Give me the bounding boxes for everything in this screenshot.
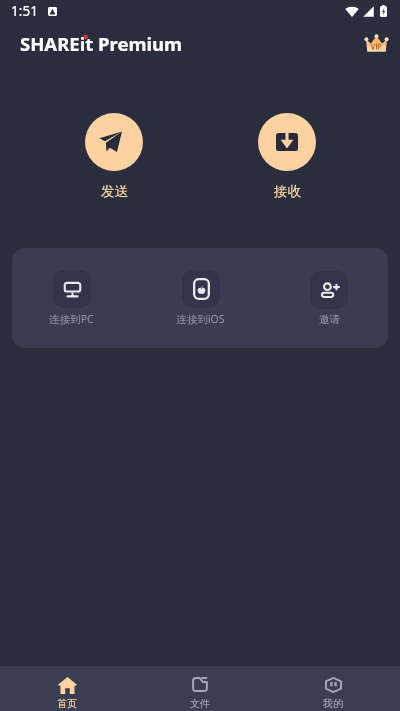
button[interactable]: 文件 bbox=[170, 666, 230, 710]
staticText: 文件 bbox=[190, 697, 210, 710]
staticText: 1:51 bbox=[11, 2, 38, 20]
button[interactable]: 连接到PC bbox=[49, 268, 94, 328]
staticText: 连接到PC bbox=[49, 312, 94, 326]
button[interactable]: 首页 bbox=[37, 666, 97, 710]
button[interactable]: 我的 bbox=[303, 666, 363, 710]
staticText: SHAREit Premium bbox=[20, 31, 183, 56]
button[interactable]: VIP bbox=[363, 30, 389, 56]
staticText: 我的 bbox=[323, 697, 343, 710]
staticText: 发送 bbox=[101, 183, 128, 200]
button[interactable]: 接收 bbox=[258, 113, 316, 200]
staticText: 首页 bbox=[57, 697, 77, 710]
staticText: 邀请 bbox=[319, 313, 340, 326]
button[interactable]: 发送 bbox=[85, 113, 143, 200]
button[interactable]: 连接到iOS bbox=[176, 268, 225, 328]
staticText: 接收 bbox=[274, 183, 301, 200]
staticText: 连接到iOS bbox=[176, 312, 225, 326]
button[interactable]: 邀请 bbox=[310, 269, 348, 328]
